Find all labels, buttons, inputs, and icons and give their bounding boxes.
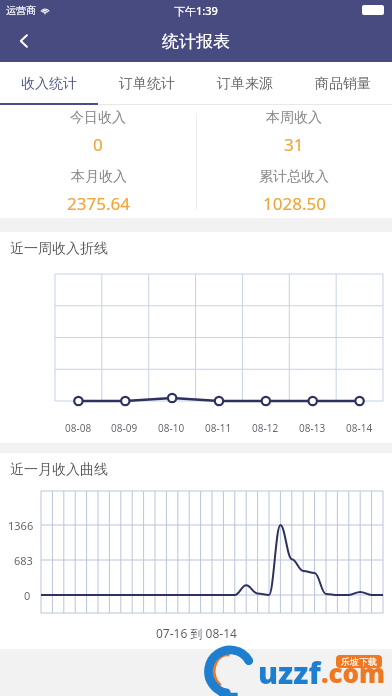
staticText: 下午1:39	[174, 3, 218, 18]
staticText: 统计报表	[162, 31, 230, 52]
staticText: 今日收入	[70, 109, 126, 127]
staticText: 08-11	[205, 421, 232, 435]
staticText: 本月收入	[71, 168, 127, 186]
staticText: 08-14	[346, 421, 373, 435]
staticText: 08-09	[111, 421, 138, 435]
staticText: uzzf	[258, 652, 321, 693]
button[interactable]: 商品销量	[294, 62, 392, 105]
staticText: 0	[93, 133, 103, 156]
staticText: 乐坡下载	[341, 656, 377, 667]
staticText: 683	[14, 553, 33, 568]
staticText: 08-13	[299, 421, 326, 435]
staticText: 商品销量	[315, 75, 371, 93]
staticText: 0	[24, 588, 31, 603]
button[interactable]: Back	[0, 20, 48, 62]
staticText: 31	[284, 133, 304, 156]
button[interactable]: 订单来源	[196, 62, 294, 105]
staticText: 1028.50	[263, 192, 326, 215]
staticText: 07-16 到 08-14	[156, 625, 237, 641]
staticText: 近一月收入曲线	[10, 461, 108, 479]
staticText: 2375.64	[67, 192, 130, 215]
staticText: 08-12	[252, 421, 279, 435]
staticText: 运营商	[6, 4, 36, 17]
staticText: 累计总收入	[259, 168, 329, 186]
staticText: 本周收入	[266, 109, 322, 127]
staticText: 订单来源	[217, 75, 273, 93]
button[interactable]: 收入统计	[0, 62, 98, 105]
button[interactable]: 今日收入	[0, 105, 196, 218]
button[interactable]: 本周收入	[196, 105, 392, 218]
staticText: 近一周收入折线	[10, 240, 108, 258]
staticText: 收入统计	[21, 75, 77, 93]
button[interactable]: 订单统计	[98, 62, 196, 105]
staticText: 08-10	[158, 421, 185, 435]
staticText: 1366	[8, 518, 34, 533]
staticText: .com	[321, 655, 386, 690]
staticText: 08-08	[65, 421, 92, 435]
staticText: 订单统计	[119, 75, 175, 93]
